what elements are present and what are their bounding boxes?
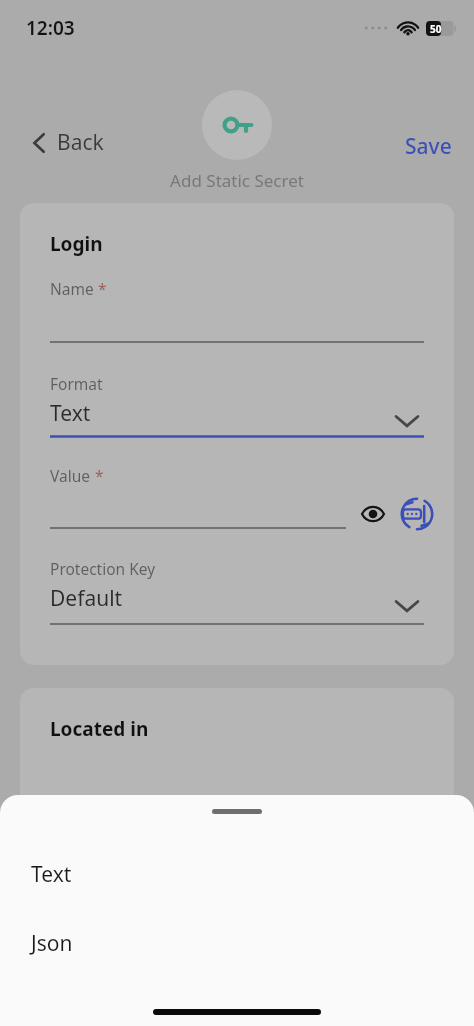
staticText: Format xyxy=(50,373,103,394)
button[interactable]: Save xyxy=(383,126,474,167)
staticText: Default xyxy=(50,584,123,613)
staticText: Back xyxy=(57,128,104,157)
staticText: Text xyxy=(50,399,91,428)
staticText: Name xyxy=(50,278,94,299)
button[interactable]: Back xyxy=(28,122,108,163)
staticText: * xyxy=(94,278,107,299)
staticText: Located in xyxy=(50,716,149,742)
button[interactable]: Default xyxy=(48,580,426,628)
button[interactable]: Text xyxy=(0,843,474,905)
staticText: Save xyxy=(405,132,452,161)
staticText: 50 xyxy=(430,22,442,36)
staticText: * xyxy=(91,465,104,486)
button[interactable]: Text xyxy=(48,395,426,443)
staticText: Text xyxy=(31,860,72,889)
staticText: Json xyxy=(31,929,73,958)
staticText: Add Static Secret xyxy=(0,169,474,192)
button[interactable]: Show value xyxy=(356,497,390,531)
staticText: Value xyxy=(50,465,91,486)
staticText: Protection Key xyxy=(50,558,156,579)
button[interactable]: Generate value xyxy=(394,491,440,537)
button[interactable]: Json xyxy=(0,912,474,974)
staticText: 12:03 xyxy=(26,15,75,41)
staticText: Login xyxy=(50,231,103,257)
